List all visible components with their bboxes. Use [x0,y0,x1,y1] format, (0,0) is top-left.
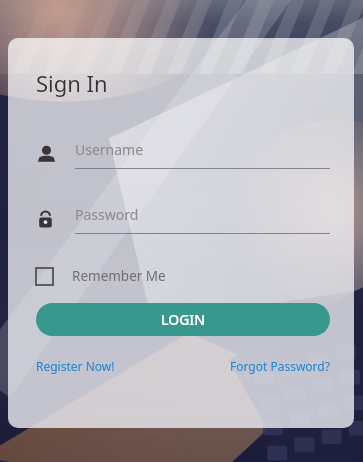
button[interactable]: Password [36,203,330,234]
button[interactable]: Remember Me [36,267,166,285]
staticText: Password [75,205,139,224]
staticText: Remember Me [72,267,166,285]
other: Username [36,144,57,165]
button[interactable]: Sign In [36,68,108,98]
staticText: Username [75,140,144,159]
button[interactable]: Forgot Password? [230,358,330,374]
button[interactable]: Register Now! [36,358,115,374]
staticText: LOGIN [161,310,206,329]
button[interactable]: Username [36,138,330,169]
button[interactable]: LOGIN [36,303,330,336]
other: Password [36,210,55,229]
